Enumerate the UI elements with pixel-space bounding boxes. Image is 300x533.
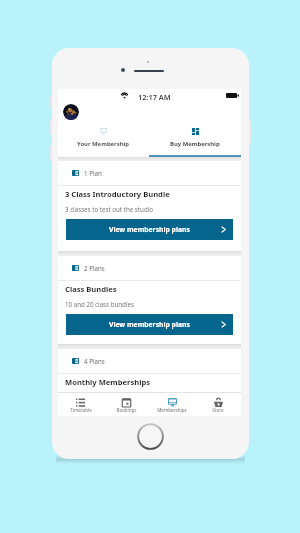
button[interactable]: Home (137, 423, 164, 450)
staticText: 10 and 20 class bundles (65, 300, 134, 308)
staticText: Your Membership (77, 140, 130, 148)
staticText: 2 Plans (84, 264, 105, 272)
button[interactable]: View membership plans (66, 219, 233, 240)
button[interactable]: Bookings (103, 393, 149, 416)
staticText: Store (212, 407, 224, 413)
staticText: 1 Plan (84, 169, 102, 177)
button[interactable]: Timetable (58, 393, 103, 416)
staticText: 3 Class Introductory Bundle (65, 189, 170, 199)
button[interactable]: Buy Membership (149, 120, 241, 157)
staticText: Bookings (116, 407, 137, 413)
staticText: 3 classes to test out the studio (65, 205, 154, 213)
button[interactable]: View membership plans (66, 314, 233, 335)
staticText: 12:17 AM (138, 92, 171, 102)
staticText: 4 Plans (84, 357, 105, 365)
staticText: View membership plans (109, 320, 190, 329)
button[interactable]: Profile (63, 104, 79, 120)
button[interactable]: Store (195, 393, 241, 416)
staticText: Buy Membership (170, 140, 220, 148)
staticText: Timetable (70, 407, 92, 413)
staticText: Monthly Memberships (65, 377, 151, 387)
staticText: View membership plans (109, 225, 190, 234)
button[interactable]: Memberships (149, 393, 195, 416)
staticText: Memberships (157, 407, 187, 413)
staticText: Class Bundles (65, 284, 117, 294)
button[interactable]: Your Membership (58, 120, 149, 157)
